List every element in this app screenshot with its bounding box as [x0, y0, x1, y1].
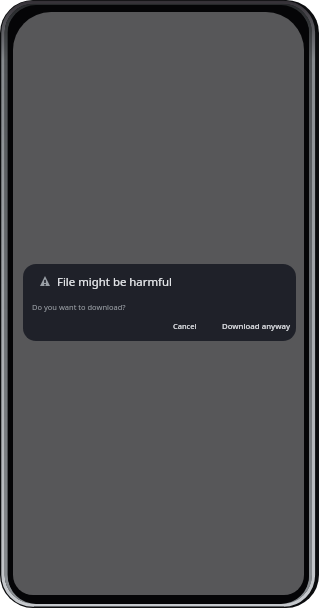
- staticText: Do you want to download?: [32, 302, 126, 312]
- button[interactable]: File might be harmful: [23, 264, 296, 341]
- staticText: Download anyway: [222, 321, 291, 332]
- button[interactable]: Cancel: [163, 313, 207, 339]
- staticText: File might be harmful: [57, 274, 172, 290]
- button[interactable]: Download anyway: [212, 313, 296, 340]
- staticText: Cancel: [173, 321, 197, 331]
